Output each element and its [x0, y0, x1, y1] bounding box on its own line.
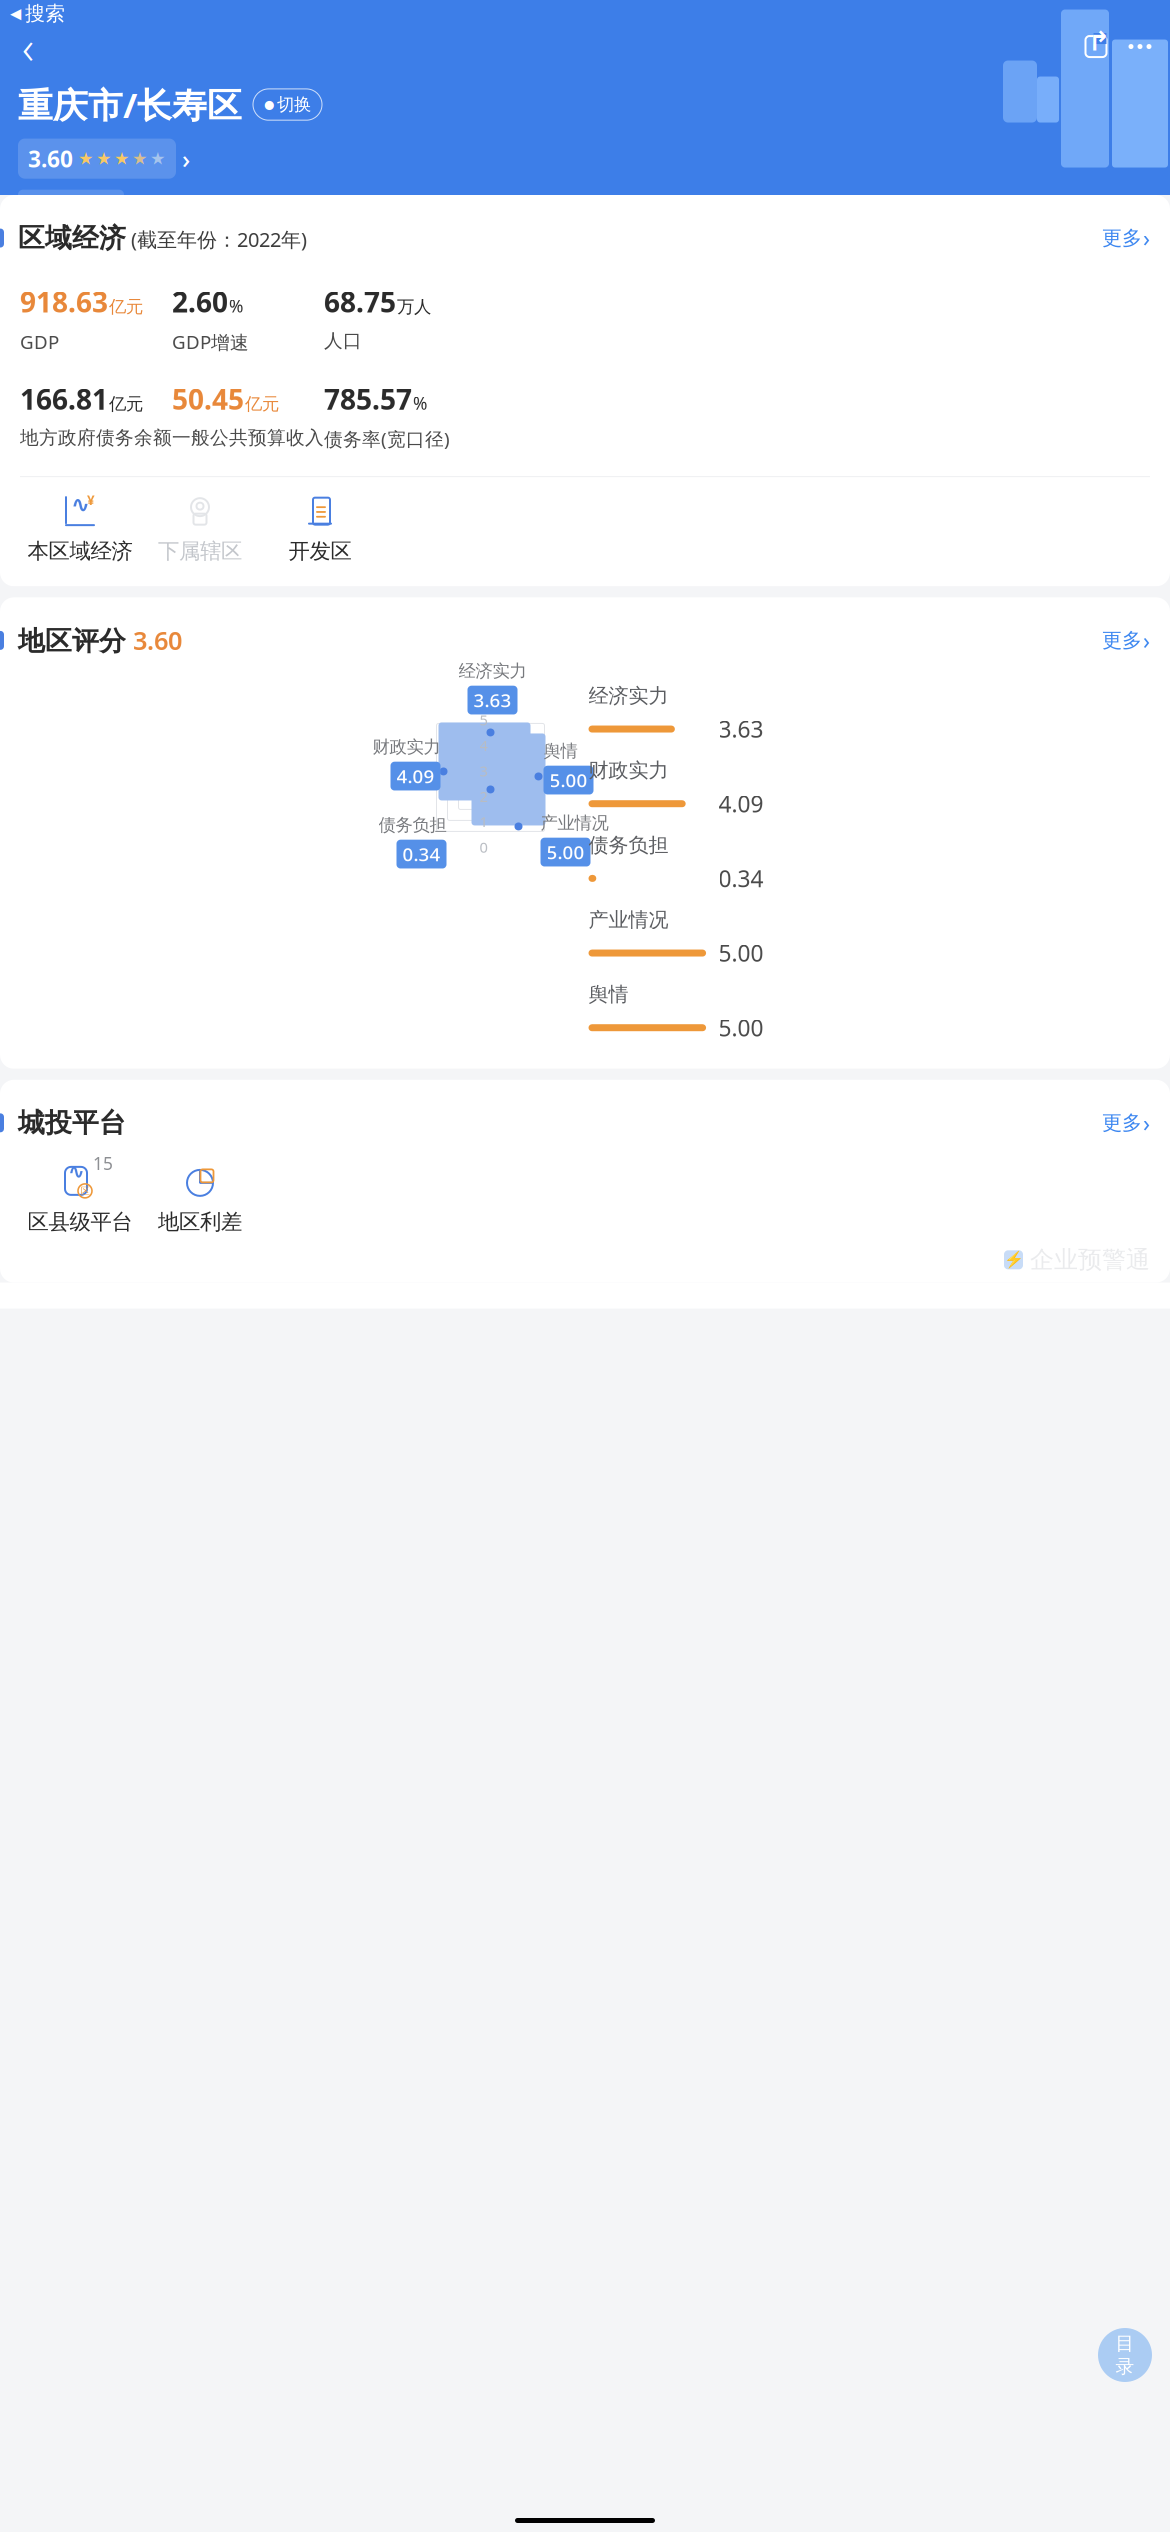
- staticText: 开发区: [288, 538, 351, 564]
- staticText: 亿元: [245, 393, 279, 414]
- staticText: ∿: [68, 1160, 85, 1183]
- staticText: ★: [114, 149, 130, 168]
- staticText: ‹: [22, 16, 34, 77]
- staticText: (截至年份：2022年): [126, 226, 307, 252]
- staticText: 更多: [1102, 226, 1142, 250]
- staticText: 1: [479, 812, 487, 831]
- staticText: %: [229, 294, 243, 317]
- staticText: 4.09: [718, 789, 763, 819]
- staticText: ★: [96, 149, 112, 168]
- button[interactable]: 目录: [1098, 2328, 1152, 2382]
- staticText: 3: [479, 761, 487, 780]
- staticText: %: [413, 391, 427, 414]
- staticText: 亿元: [109, 393, 143, 414]
- staticText: 68.75: [324, 283, 396, 320]
- staticText: 债务率(宽口径): [324, 426, 450, 451]
- staticText: 2.60: [172, 283, 228, 320]
- button[interactable]: 下属辖区: [140, 494, 260, 564]
- staticText: 产业情况: [540, 812, 608, 834]
- staticText: ›: [1143, 1108, 1150, 1138]
- staticText: 0.34: [402, 842, 440, 866]
- staticText: 785.57: [324, 380, 412, 417]
- button[interactable]: 3.60: [0, 139, 1170, 179]
- staticText: 3.63: [473, 688, 511, 712]
- staticText: 5.00: [546, 840, 584, 864]
- staticText: 下属辖区: [158, 538, 242, 564]
- button[interactable]: 地区利差: [140, 1166, 260, 1235]
- staticText: ›: [1143, 625, 1150, 655]
- staticText: 重庆市/长寿区: [18, 81, 242, 127]
- staticText: 区: [80, 1185, 89, 1197]
- staticText: 更多: [1102, 1111, 1142, 1135]
- staticText: 万人: [397, 296, 431, 317]
- staticText: GDP增速: [172, 329, 249, 354]
- staticText: 舆情: [588, 982, 628, 1007]
- staticText: 15: [93, 1152, 113, 1175]
- staticText: 0: [479, 837, 487, 857]
- button[interactable]: ∿: [20, 1166, 140, 1235]
- button[interactable]: More options: [1118, 24, 1162, 68]
- staticText: 本区域经济: [27, 538, 132, 564]
- staticText: 企业预警通: [1030, 1245, 1150, 1275]
- staticText: ★: [132, 149, 148, 168]
- staticText: 一般公共预算收入: [172, 426, 324, 449]
- staticText: 财政实力: [372, 736, 440, 758]
- staticText: 4: [479, 735, 487, 755]
- staticText: 更多: [1102, 628, 1142, 653]
- staticText: 债务负担: [378, 814, 446, 836]
- staticText: ∿: [71, 491, 90, 517]
- staticText: 166.81: [20, 380, 108, 417]
- staticText: GDP: [20, 329, 59, 354]
- staticText: 区县级平台: [27, 1209, 132, 1235]
- staticText: 5.00: [718, 938, 763, 968]
- staticText: 目: [1115, 2332, 1134, 2355]
- button[interactable]: ∿: [20, 494, 140, 564]
- staticText: 搜索: [25, 1, 65, 26]
- staticText: 5: [479, 710, 487, 729]
- staticText: ●: [264, 98, 274, 111]
- staticText: ◀: [10, 5, 21, 22]
- staticText: 区域经济: [18, 222, 126, 254]
- staticText: 录: [1115, 2355, 1134, 2378]
- staticText: 产业情况: [588, 907, 668, 932]
- staticText: 50.45: [172, 380, 244, 417]
- staticText: 5.00: [549, 768, 587, 792]
- button[interactable]: Back: [6, 24, 50, 68]
- staticText: ¥: [87, 491, 95, 509]
- staticText: 4.09: [396, 764, 434, 788]
- button[interactable]: 更多: [1092, 1102, 1150, 1144]
- staticText: 918.63: [20, 283, 108, 320]
- staticText: 经济实力: [458, 660, 526, 682]
- staticText: 地方政府债务余额: [20, 426, 172, 449]
- button[interactable]: 更多: [1092, 619, 1150, 661]
- staticText: ★: [78, 149, 94, 168]
- staticText: 0.34: [718, 863, 763, 893]
- staticText: 地区评分: [18, 625, 126, 657]
- staticText: 债务负担: [588, 833, 668, 857]
- button[interactable]: 开发区: [260, 494, 380, 564]
- staticText: 3.60: [28, 144, 73, 174]
- staticText: ›: [1143, 223, 1150, 253]
- staticText: 3.60: [133, 623, 182, 657]
- staticText: 财政实力: [588, 758, 668, 783]
- staticText: 3.63: [718, 714, 763, 744]
- staticText: ★: [150, 149, 166, 168]
- staticText: ⚡: [1003, 1251, 1023, 1269]
- staticText: 人口: [324, 329, 362, 352]
- staticText: ↱: [1088, 26, 1110, 57]
- staticText: 经济实力: [588, 683, 668, 708]
- staticText: 地区利差: [158, 1209, 242, 1235]
- staticText: 城投平台: [18, 1106, 126, 1139]
- staticText: 舆情: [543, 740, 577, 762]
- button[interactable]: 更多: [1092, 217, 1150, 259]
- staticText: 5.00: [718, 1013, 763, 1043]
- staticText: 亿元: [109, 296, 143, 317]
- staticText: 2: [479, 786, 487, 806]
- button[interactable]: ●: [253, 89, 322, 120]
- staticText: ›: [182, 142, 190, 175]
- staticText: 切换: [277, 94, 311, 115]
- staticText: 百强县(区): [27, 194, 115, 218]
- button[interactable]: Share: [1074, 24, 1118, 68]
